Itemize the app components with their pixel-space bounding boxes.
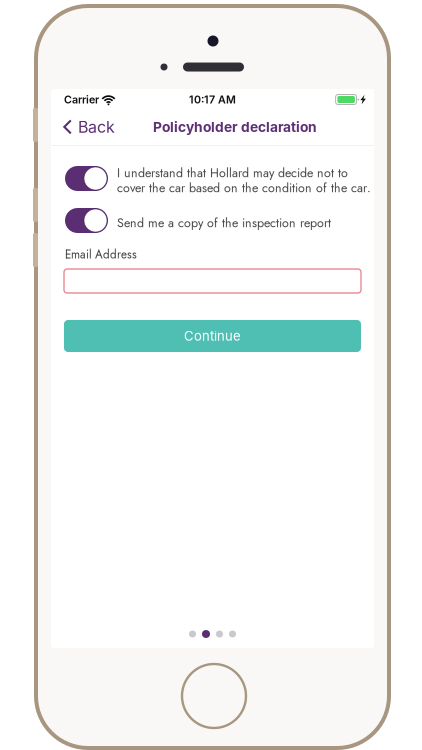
button[interactable] bbox=[65, 208, 108, 233]
staticText: cover the car based on the condition of … bbox=[117, 179, 371, 197]
staticText: Continue bbox=[184, 328, 241, 344]
staticText: Carrier bbox=[64, 93, 99, 106]
button[interactable] bbox=[65, 166, 108, 191]
staticText: 10:17 AM bbox=[189, 93, 236, 106]
button[interactable]: Continue bbox=[64, 320, 361, 352]
button[interactable]: Back bbox=[51, 112, 125, 142]
staticText: Send me a copy of the inspection report bbox=[117, 214, 331, 232]
staticText: Policyholder declaration bbox=[153, 119, 317, 135]
staticText: Back bbox=[78, 117, 115, 137]
staticText: Email Address bbox=[65, 246, 137, 263]
staticText: I understand that Hollard may decide not… bbox=[117, 164, 348, 182]
